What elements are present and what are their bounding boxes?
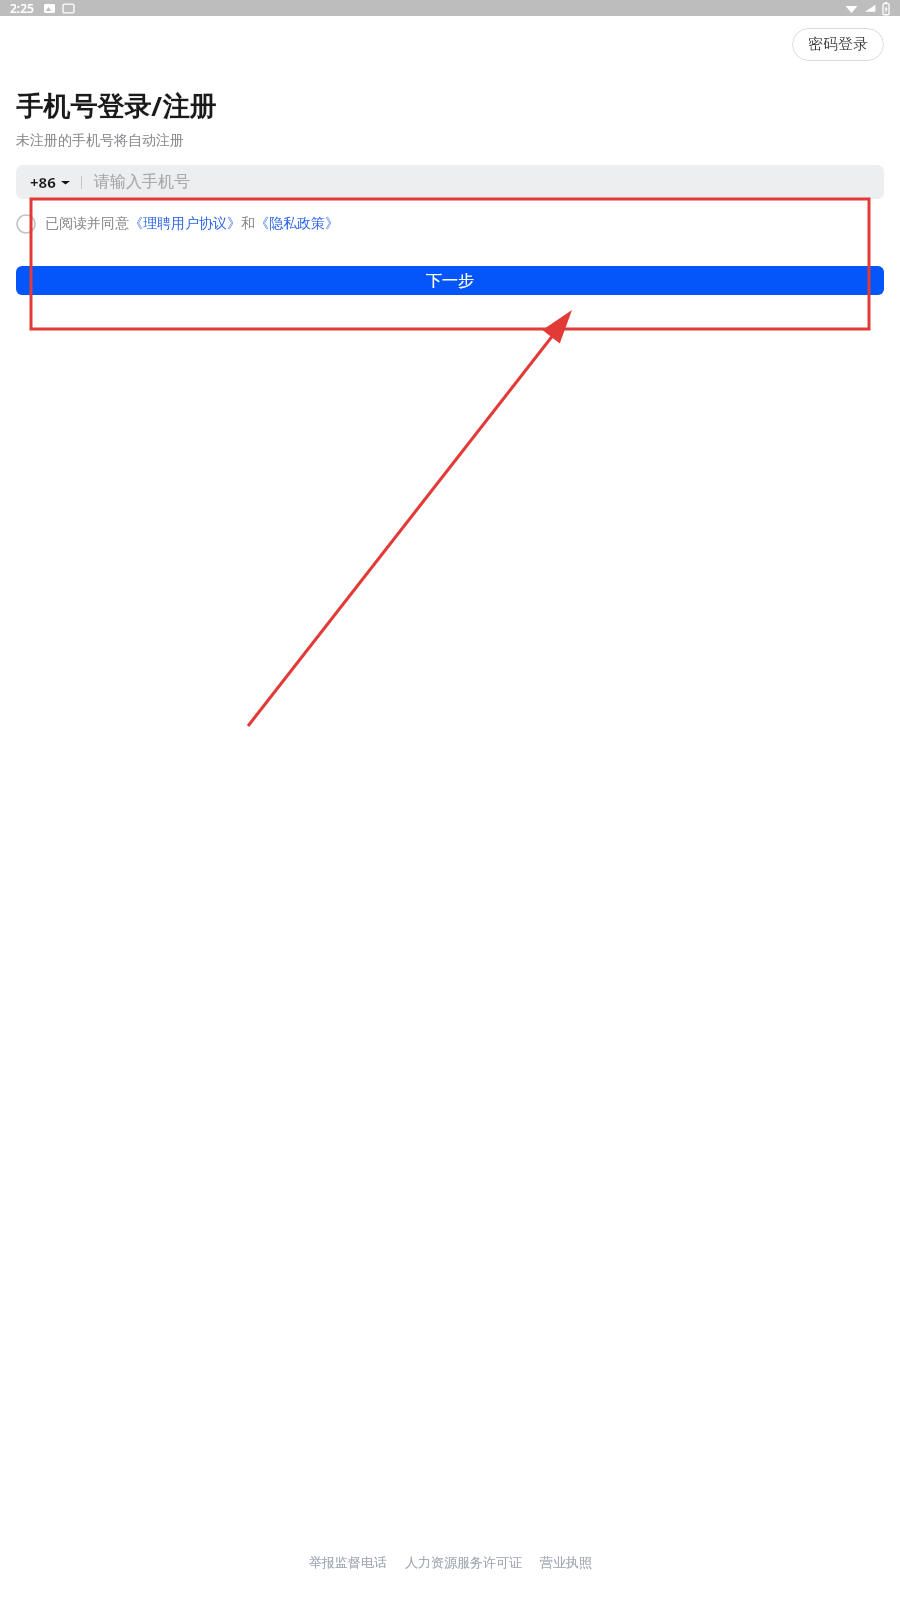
button[interactable]: 下一步: [16, 266, 884, 295]
staticText: +86: [30, 172, 56, 192]
staticText: 请输入手机号: [94, 172, 190, 192]
button[interactable]: 举报监督电话: [300, 1554, 396, 1570]
staticText: 营业执照: [540, 1554, 592, 1570]
staticText: 已阅读并同意《理聘用户协议》和《隐私政策》: [45, 215, 339, 233]
staticText: 2:25: [10, 0, 34, 16]
button[interactable]: 人力资源服务许可证: [396, 1554, 531, 1570]
staticText: 人力资源服务许可证: [405, 1554, 522, 1570]
staticText: 手机号登录/注册: [16, 87, 217, 124]
button[interactable]: 已阅读并同意《理聘用户协议》和《隐私政策》: [16, 214, 339, 234]
button[interactable]: 密码登录: [792, 28, 884, 61]
staticText: 未注册的手机号将自动注册: [16, 132, 184, 150]
button[interactable]: +86: [16, 165, 884, 199]
staticText: 下一步: [426, 271, 474, 291]
staticText: 密码登录: [808, 35, 868, 54]
button[interactable]: 营业执照: [531, 1554, 601, 1570]
staticText: 举报监督电话: [309, 1554, 387, 1570]
